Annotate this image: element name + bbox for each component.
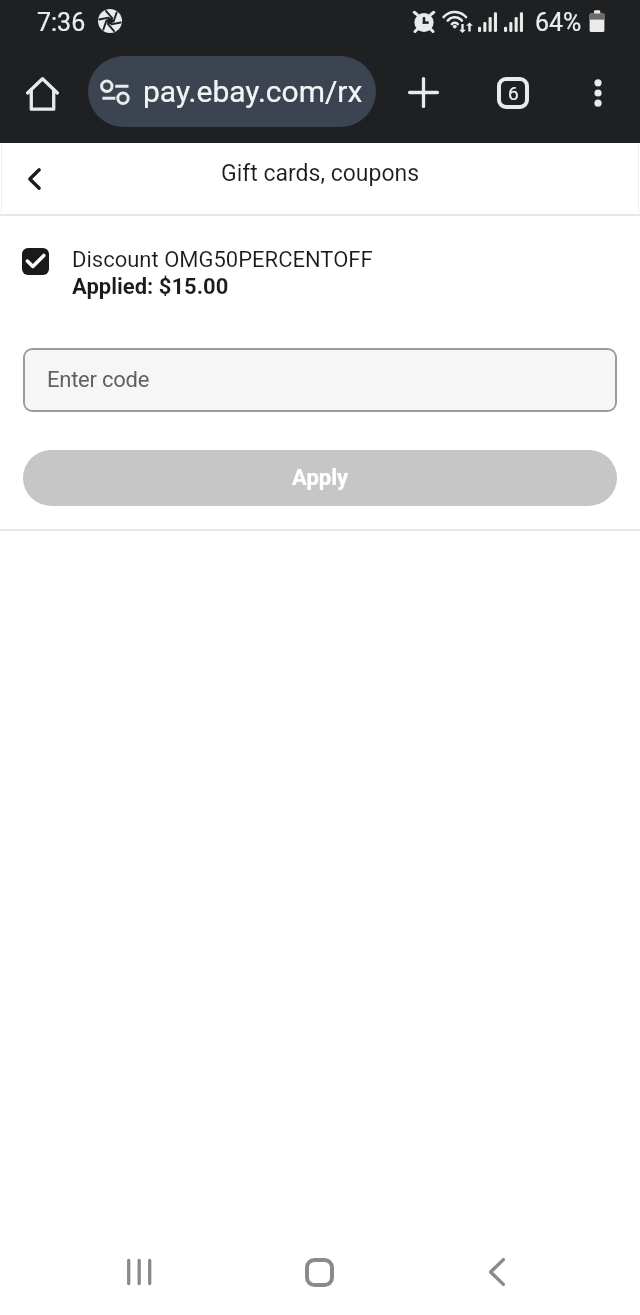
button[interactable]: Back bbox=[8, 156, 60, 202]
staticText: 6 bbox=[508, 82, 519, 104]
staticText: 7:36 bbox=[37, 8, 86, 37]
button[interactable]: Recent apps bbox=[109, 1242, 169, 1302]
button[interactable]: Customize and control Chrome bbox=[571, 66, 624, 119]
staticText: pay.ebay.com/rx bbox=[143, 74, 363, 109]
staticText: Discount OMG50PERCENTOFF bbox=[72, 247, 373, 273]
button[interactable]: Back bbox=[467, 1242, 527, 1302]
button[interactable]: Home page bbox=[16, 67, 69, 120]
staticText: Gift cards, coupons bbox=[221, 160, 420, 187]
button[interactable]: Enter code bbox=[23, 348, 617, 412]
button[interactable]: Apply bbox=[23, 450, 617, 506]
button[interactable]: New tab bbox=[397, 66, 450, 119]
staticText: Apply bbox=[292, 465, 349, 491]
button[interactable]: Discount OMG50PERCENTOFF bbox=[0, 240, 640, 302]
button[interactable]: Switch tabs, 6 open tabs bbox=[486, 66, 539, 119]
button[interactable]: Home bbox=[289, 1242, 349, 1302]
staticText: 64% bbox=[535, 8, 582, 37]
staticText: Applied: $15.00 bbox=[72, 274, 229, 300]
button[interactable]: pay.ebay.com/rx bbox=[88, 56, 376, 127]
staticText: Enter code bbox=[47, 367, 150, 393]
